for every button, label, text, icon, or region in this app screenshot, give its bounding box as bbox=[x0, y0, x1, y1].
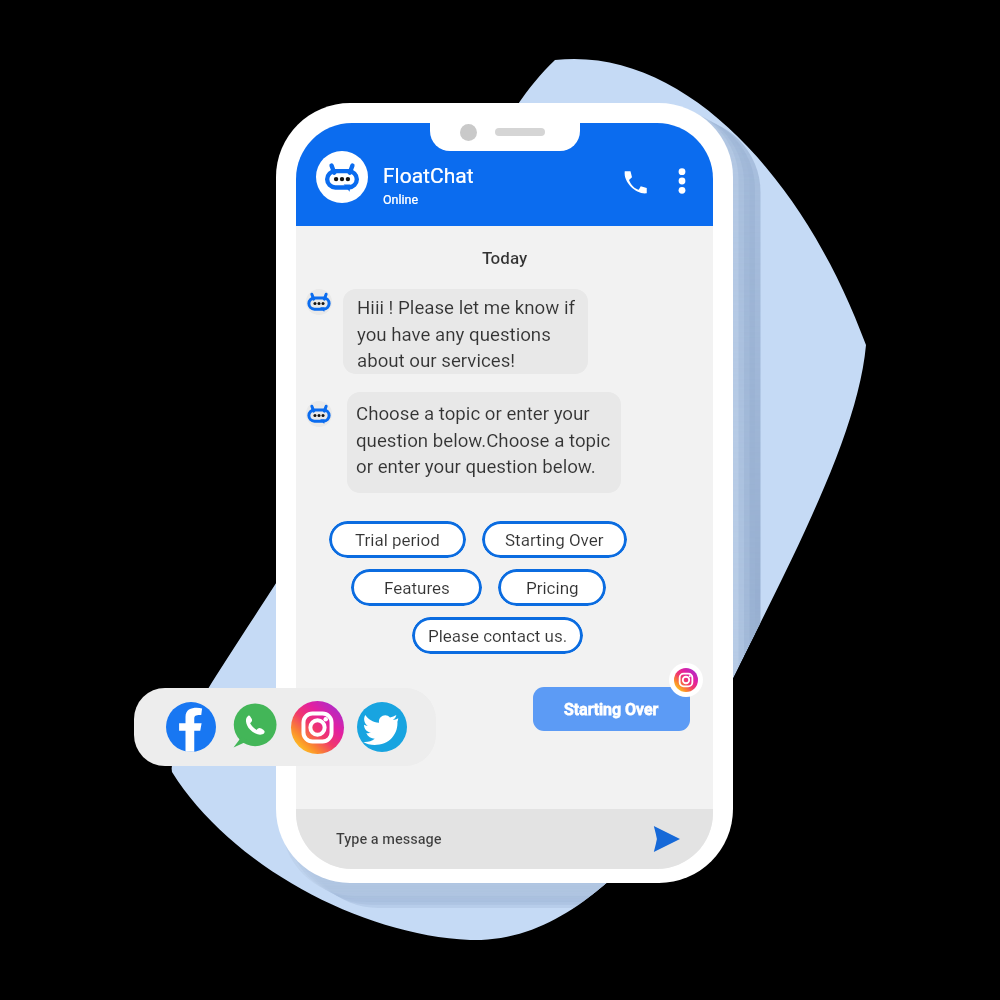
staticText: Choose a topic or enter your question be… bbox=[356, 403, 611, 477]
button[interactable]: Trial period bbox=[329, 521, 466, 558]
button[interactable]: Instagram bbox=[291, 701, 344, 754]
staticText: Online bbox=[383, 192, 419, 207]
button[interactable]: Features bbox=[351, 569, 482, 606]
button[interactable]: More options bbox=[661, 160, 703, 202]
button[interactable]: Please contact us. bbox=[412, 617, 583, 654]
button[interactable]: Call bbox=[614, 160, 656, 202]
staticText: Pricing bbox=[526, 578, 579, 598]
staticText: Starting Over bbox=[505, 530, 604, 550]
staticText: Features bbox=[384, 578, 450, 598]
staticText: Trial period bbox=[355, 530, 440, 550]
staticText: FloatChat bbox=[383, 164, 474, 189]
button[interactable]: Send bbox=[648, 821, 684, 857]
staticText: Today bbox=[482, 248, 528, 268]
staticText: Hiii ! Please let me know if you have an… bbox=[357, 297, 575, 371]
button[interactable]: Twitter bbox=[357, 702, 407, 752]
button[interactable]: WhatsApp bbox=[230, 703, 277, 750]
button[interactable]: Starting Over bbox=[533, 687, 690, 731]
button[interactable]: Facebook bbox=[166, 702, 216, 752]
button[interactable]: Pricing bbox=[498, 569, 606, 606]
staticText: Please contact us. bbox=[428, 626, 568, 646]
button[interactable]: Starting Over bbox=[482, 521, 627, 558]
staticText: Starting Over bbox=[564, 700, 659, 719]
staticText: Type a message bbox=[336, 831, 442, 848]
